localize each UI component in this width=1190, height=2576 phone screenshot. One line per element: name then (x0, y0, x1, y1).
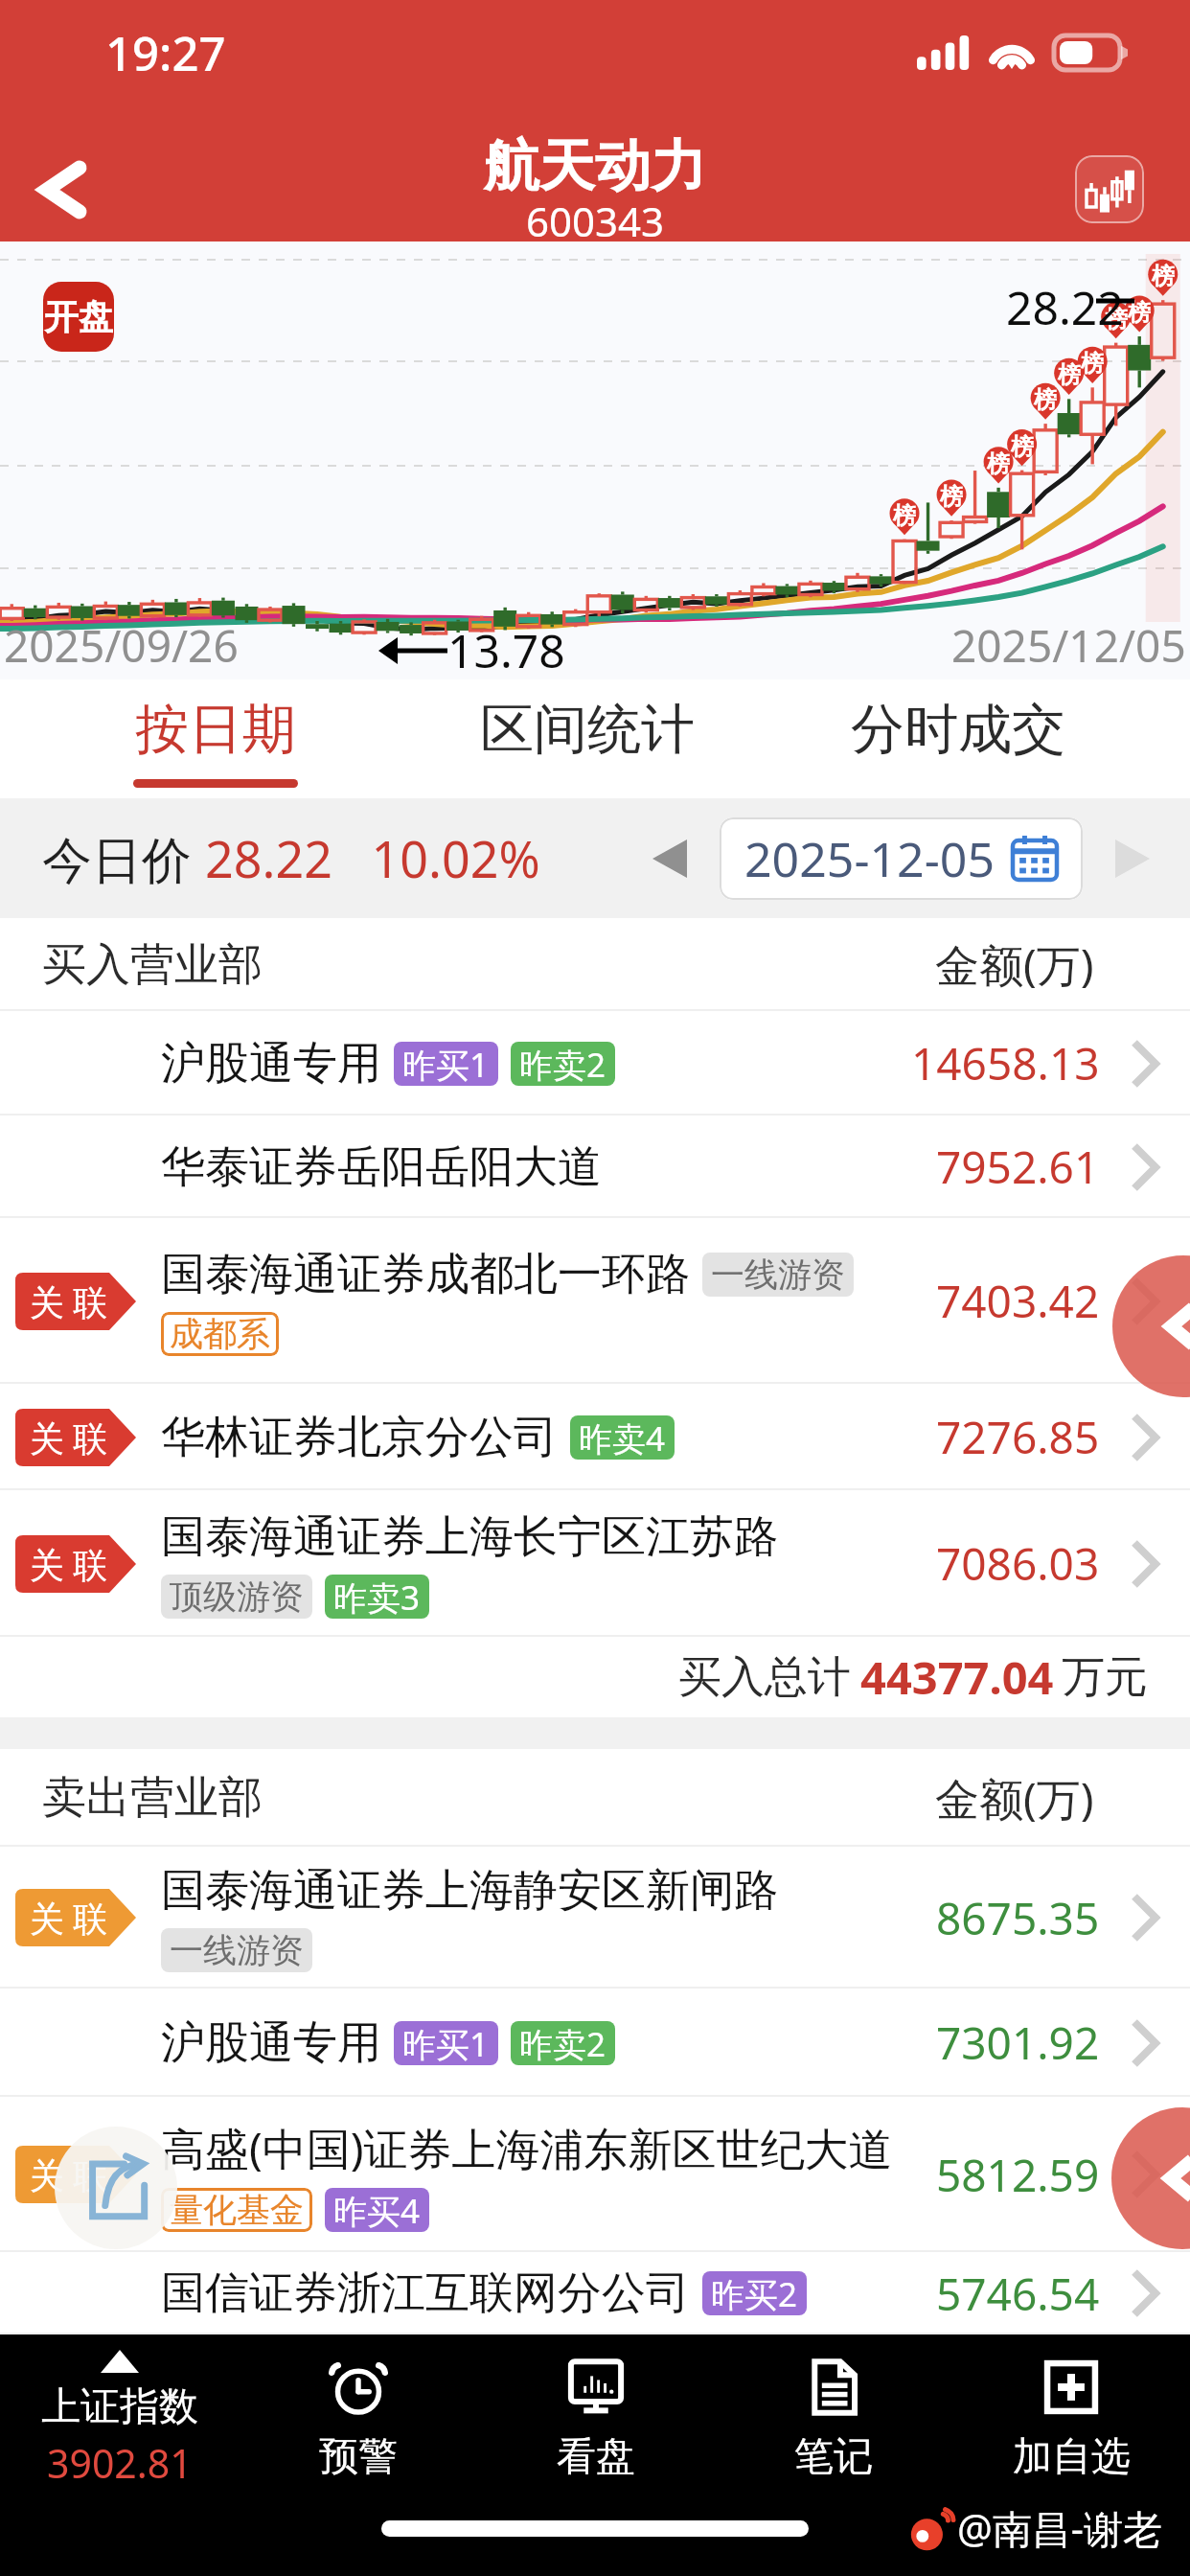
staticText: 关 联 (30, 2151, 108, 2198)
staticText: 万元 (1062, 1650, 1148, 1705)
button[interactable]: 关 联 (0, 1847, 1190, 1989)
button[interactable]: 看盘 (477, 2334, 715, 2492)
staticText: 预警 (319, 2432, 398, 2482)
staticText: 昨买4 (333, 2188, 421, 2232)
staticText: 榜 (1152, 262, 1175, 290)
button[interactable]: Previous day (633, 822, 706, 895)
staticText: 3902.81 (47, 2436, 193, 2490)
button[interactable]: Previous stock (1112, 1255, 1190, 1397)
staticText: 榜 (893, 501, 916, 530)
staticText: 沪股通专用 (161, 2015, 381, 2071)
staticText: 2025-12-05 (744, 826, 995, 891)
button[interactable]: 上证指数 (0, 2334, 239, 2492)
staticText: 国泰海通证券上海长宁区江苏路 (161, 1509, 778, 1565)
button[interactable]: Previous stock (1111, 2107, 1190, 2249)
staticText: 成都系 (170, 1313, 270, 1355)
staticText: 2025/09/26 (4, 615, 239, 676)
staticText: 区间统计 (480, 696, 695, 764)
staticText: 顶级游资 (170, 1575, 304, 1618)
staticText: 一线游资 (711, 1253, 845, 1296)
button[interactable]: 沪股通专用 (0, 1011, 1190, 1115)
staticText: 昨买2 (711, 2271, 798, 2315)
button[interactable]: 国信证券浙江互联网分公司 (0, 2252, 1190, 2334)
button[interactable]: Next day (1096, 822, 1169, 895)
staticText: 19:27 (105, 21, 226, 85)
staticText: 一线游资 (170, 1929, 304, 1971)
staticText: 7301.92 (936, 2012, 1100, 2073)
staticText: 榜 (987, 449, 1010, 478)
staticText: 7086.03 (936, 1533, 1100, 1594)
staticText: 航天动力 (484, 131, 706, 201)
staticText: 榜 (1034, 385, 1057, 414)
staticText: 14658.13 (911, 1033, 1100, 1093)
button[interactable]: 关 联 (0, 2097, 1190, 2252)
staticText: 榜 (940, 482, 963, 511)
staticText: 买入总计 (678, 1650, 851, 1705)
staticText: 7403.42 (936, 1271, 1100, 1331)
staticText: 2025/12/05 (951, 615, 1186, 676)
button[interactable]: 关 联 (0, 1218, 1190, 1384)
button[interactable]: 按日期 (30, 679, 401, 798)
staticText: 关 联 (30, 1414, 108, 1461)
staticText: 昨卖4 (579, 1415, 666, 1460)
staticText: 5746.54 (936, 2264, 1100, 2324)
staticText: 44377.04 (860, 1646, 1054, 1708)
staticText: 沪股通专用 (161, 1036, 381, 1092)
button[interactable]: 笔记 (715, 2334, 952, 2492)
staticText: 加自选 (1013, 2432, 1131, 2482)
staticText: 榜 (1105, 305, 1128, 333)
staticText: 榜 (1128, 298, 1151, 327)
staticText: 分时成交 (851, 696, 1065, 764)
staticText: 今日价 (42, 824, 205, 892)
staticText: 国泰海通证券上海静安区新闸路 (161, 1863, 778, 1919)
staticText: 上证指数 (41, 2382, 198, 2432)
staticText: 按日期 (135, 696, 296, 764)
button[interactable]: 华泰证券岳阳岳阳大道 (0, 1115, 1190, 1218)
button[interactable]: 分时成交 (772, 679, 1143, 798)
button[interactable]: 加自选 (952, 2334, 1190, 2492)
staticText: 榜 (1058, 360, 1081, 389)
staticText: 高盛(中国)证券上海浦东新区世纪大道 (161, 2118, 893, 2178)
button[interactable]: Share (55, 2127, 177, 2249)
button[interactable]: 沪股通专用 (0, 1989, 1190, 2097)
staticText: 华林证券北京分公司 (161, 1410, 558, 1465)
button[interactable]: Back (0, 132, 126, 247)
button[interactable]: 关 联 (0, 1384, 1190, 1490)
staticText: 看盘 (557, 2432, 635, 2482)
staticText: 7276.85 (936, 1407, 1100, 1467)
staticText: 关 联 (30, 1895, 108, 1942)
staticText: 金额(万) (935, 934, 1094, 995)
staticText: 600343 (526, 194, 665, 248)
staticText: 7952.61 (936, 1137, 1100, 1197)
staticText: 量化基金 (170, 2189, 304, 2231)
staticText: 28.22 10.02% (205, 824, 540, 892)
staticText: 华泰证券岳阳岳阳大道 (161, 1139, 602, 1195)
button[interactable]: 2025-12-05 (720, 817, 1083, 900)
staticText: 国泰海通证券成都北一环路 (161, 1247, 690, 1302)
staticText: 开盘 (44, 295, 113, 338)
staticText: 国信证券浙江互联网分公司 (161, 2265, 690, 2321)
staticText: 榜 (1011, 432, 1034, 461)
staticText: 昨卖3 (333, 1575, 421, 1619)
staticText: 8675.35 (936, 1888, 1100, 1948)
staticText: 昨卖2 (519, 1042, 606, 1086)
staticText: 笔记 (794, 2432, 873, 2482)
button[interactable]: 区间统计 (401, 679, 772, 798)
staticText: 金额(万) (935, 1768, 1094, 1828)
staticText: 昨卖2 (519, 2021, 606, 2065)
staticText: 28.22 (1006, 276, 1124, 338)
staticText: 昨买1 (402, 1042, 490, 1086)
staticText: 5812.59 (936, 2145, 1100, 2205)
staticText: 关 联 (30, 1541, 108, 1588)
staticText: 买入营业部 (42, 937, 263, 993)
staticText: 昨买1 (402, 2021, 490, 2065)
staticText: @南昌-谢老 (957, 2501, 1163, 2555)
button[interactable]: 关 联 (0, 1490, 1190, 1637)
staticText: 卖出营业部 (42, 1770, 263, 1826)
button[interactable]: 预警 (239, 2334, 477, 2492)
staticText: 13.78 (447, 619, 565, 681)
staticText: 关 联 (30, 1278, 108, 1325)
button[interactable]: K line chart (1075, 155, 1144, 223)
staticText: 榜 (1081, 349, 1104, 378)
